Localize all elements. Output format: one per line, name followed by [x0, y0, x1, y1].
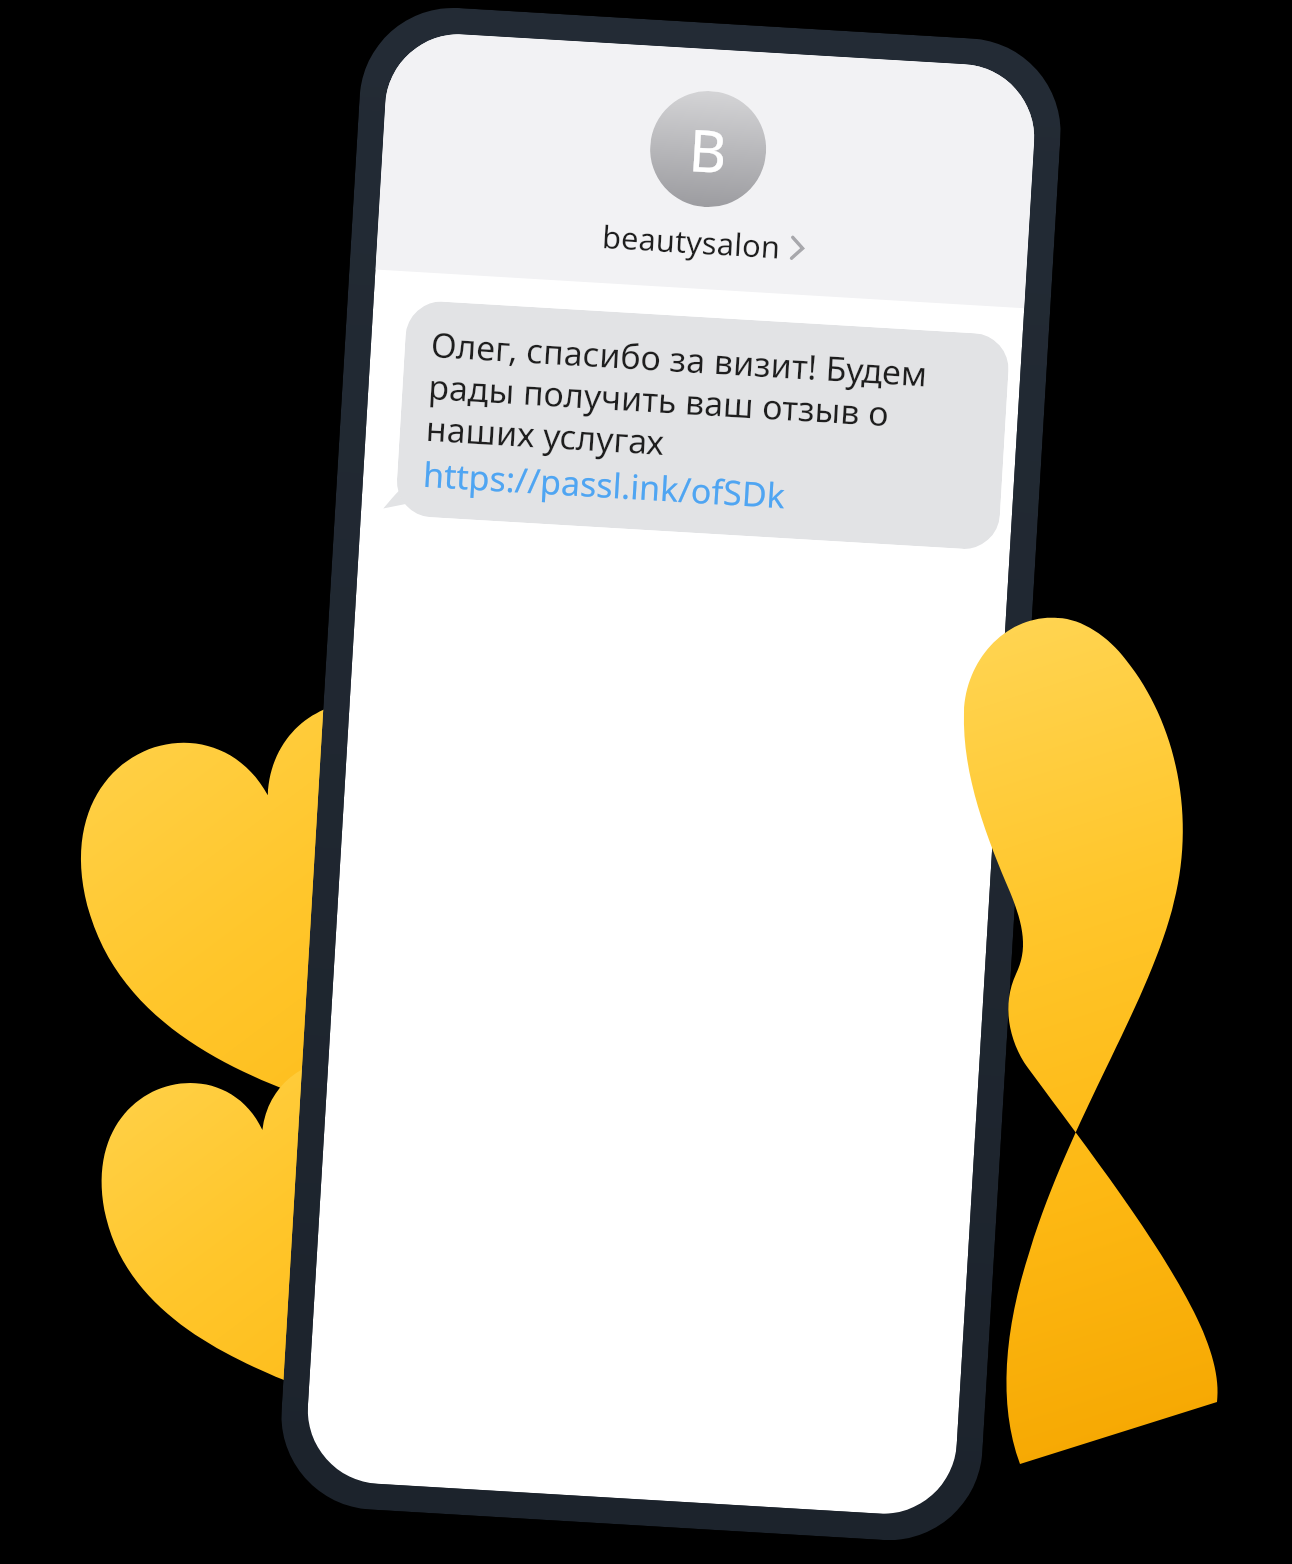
- button[interactable]: https://passl.ink/ofSDk: [422, 451, 787, 518]
- button[interactable]: beautysalon avatar: [375, 30, 1038, 308]
- other: Open contact details: [789, 235, 805, 261]
- staticText: B: [687, 109, 729, 190]
- staticText: beautysalon: [600, 215, 782, 267]
- button[interactable]: Олег, спасибо за визит! Будем рады получ…: [395, 299, 1011, 551]
- button[interactable]: beautysalon avatar: [647, 88, 769, 210]
- staticText: Олег, спасибо за визит! Будем рады получ…: [425, 321, 983, 484]
